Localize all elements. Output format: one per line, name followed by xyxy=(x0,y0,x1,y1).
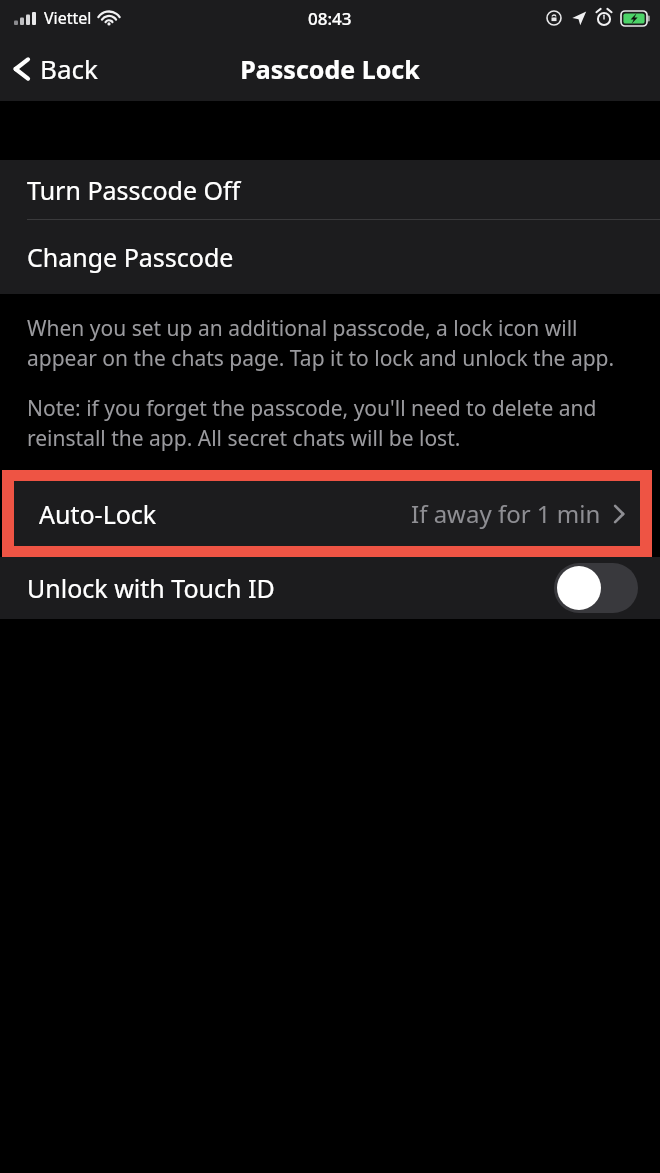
button[interactable]: Turn Passcode Off xyxy=(0,160,660,219)
staticText: Turn Passcode Off xyxy=(27,173,241,207)
staticText: Passcode Lock xyxy=(240,52,420,86)
staticText: Note: if you forget the passcode, you'll… xyxy=(27,394,636,452)
button[interactable]: Auto-Lock xyxy=(14,481,640,546)
staticText: If away for 1 min xyxy=(411,497,601,530)
staticText: Unlock with Touch ID xyxy=(27,571,275,605)
button[interactable]: Unlock with Touch ID toggle, off xyxy=(554,563,638,613)
button[interactable]: Unlock with Touch ID xyxy=(0,557,660,619)
staticText: Viettel xyxy=(44,7,92,29)
staticText: Change Passcode xyxy=(27,240,234,274)
staticText: Auto-Lock xyxy=(39,497,157,531)
staticText: 08:43 xyxy=(308,7,352,30)
button[interactable]: Change Passcode xyxy=(0,220,660,294)
staticText: When you set up an additional passcode, … xyxy=(27,314,636,372)
staticText: Back xyxy=(40,51,98,86)
button[interactable]: Back xyxy=(0,36,112,101)
